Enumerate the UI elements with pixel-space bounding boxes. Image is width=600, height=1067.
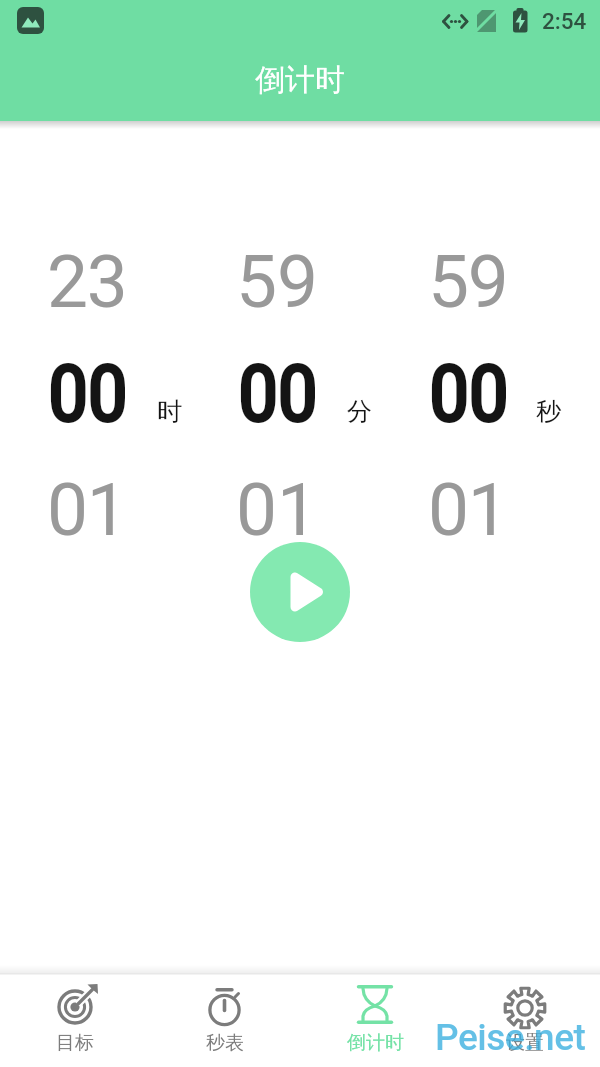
button[interactable] bbox=[250, 542, 350, 642]
staticText: 设置 bbox=[506, 1031, 544, 1055]
staticText: 秒 bbox=[536, 396, 561, 427]
staticText: 01 bbox=[428, 467, 508, 553]
button[interactable] bbox=[450, 974, 600, 1067]
button[interactable] bbox=[11, 240, 161, 550]
staticText: 00 bbox=[428, 346, 508, 442]
staticText: 01 bbox=[47, 467, 127, 553]
staticText: 23 bbox=[47, 239, 127, 325]
staticText: 倒计时 bbox=[347, 1031, 404, 1055]
button[interactable] bbox=[392, 240, 542, 550]
button[interactable] bbox=[0, 974, 150, 1067]
button[interactable] bbox=[150, 974, 300, 1067]
staticText: Peise.net bbox=[435, 1016, 586, 1059]
staticText: 分 bbox=[347, 396, 372, 427]
staticText: 00 bbox=[47, 346, 127, 442]
staticText: 秒表 bbox=[206, 1031, 244, 1055]
staticText: 时 bbox=[157, 396, 182, 427]
staticText: 目标 bbox=[56, 1031, 94, 1055]
staticText: 2:54 bbox=[542, 8, 587, 34]
button[interactable] bbox=[300, 974, 450, 1067]
staticText: 59 bbox=[236, 239, 319, 325]
staticText: 59 bbox=[428, 239, 508, 325]
button[interactable] bbox=[202, 240, 352, 550]
staticText: 01 bbox=[236, 467, 319, 553]
staticText: 00 bbox=[237, 346, 317, 442]
staticText: 倒计时 bbox=[255, 61, 345, 99]
